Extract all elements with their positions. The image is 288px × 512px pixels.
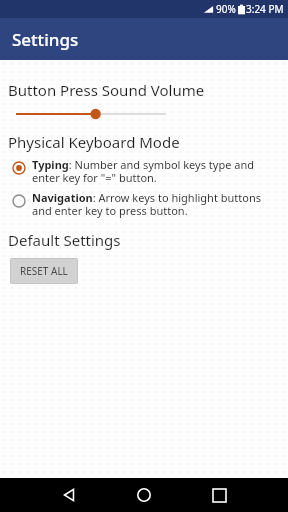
staticText: RESET ALL: [20, 264, 68, 278]
staticText: Default Settings: [8, 230, 121, 250]
button[interactable]: Typing: Number and symbol keys type and …: [8, 156, 282, 185]
staticText: Settings: [12, 28, 79, 51]
staticText: 90%: [216, 2, 236, 16]
staticText: 3:24 PM: [246, 2, 284, 16]
button[interactable]: RESET ALL: [10, 258, 78, 284]
button[interactable]: Recent apps: [206, 482, 232, 508]
staticText: Typing: Number and symbol keys type and …: [32, 157, 282, 185]
staticText: Physical Keyboard Mode: [8, 132, 180, 152]
button[interactable]: Navigation: Arrow keys to highlight butt…: [8, 189, 282, 218]
button[interactable]: [14, 106, 168, 122]
button[interactable]: Back: [56, 482, 82, 508]
staticText: Button Press Sound Volume: [8, 80, 205, 100]
staticText: Navigation: Arrow keys to highlight butt…: [32, 190, 282, 218]
button[interactable]: Home: [131, 482, 157, 508]
